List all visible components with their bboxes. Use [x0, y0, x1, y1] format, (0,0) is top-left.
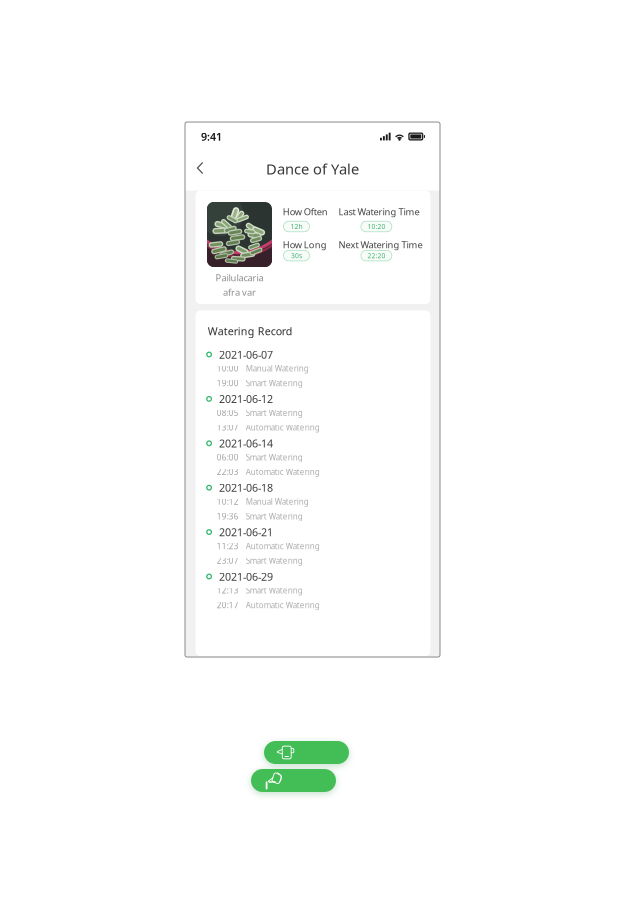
staticText: Smart Watering [246, 585, 303, 596]
staticText: Last Watering Time [339, 205, 420, 218]
staticText: Pailulacaria [215, 271, 263, 284]
staticText: Automatic Watering [246, 422, 320, 433]
staticText: afra var [223, 286, 256, 298]
staticText: Smart Watering [246, 555, 303, 566]
staticText: Automatic Watering [246, 467, 320, 477]
staticText: 2021-06-29 [219, 569, 273, 584]
staticText: 11:23 [217, 541, 239, 551]
staticText: How Long [283, 238, 327, 251]
button[interactable]: Pour water [251, 769, 336, 792]
staticText: Dance of Yale [266, 159, 359, 178]
staticText: Automatic Watering [246, 600, 320, 610]
staticText: 2021-06-18 [219, 481, 273, 495]
staticText: How Often [283, 205, 328, 218]
staticText: 10:00 [217, 363, 239, 374]
staticText: 22:03 [217, 467, 239, 477]
staticText: Smart Watering [246, 452, 303, 463]
staticText: 30s [291, 251, 302, 260]
staticText: 19:00 [217, 378, 239, 388]
staticText: 23:07 [217, 555, 239, 566]
staticText: 2021-06-07 [219, 347, 273, 362]
staticText: 12:13 [217, 585, 239, 596]
button[interactable]: Back [188, 157, 212, 179]
staticText: 22:20 [367, 251, 385, 260]
staticText: Manual Watering [246, 363, 309, 374]
staticText: Manual Watering [246, 496, 309, 507]
staticText: Smart Watering [246, 408, 303, 418]
staticText: 08:05 [217, 408, 239, 418]
staticText: 19:36 [217, 511, 239, 522]
staticText: 12h [290, 222, 302, 231]
staticText: 06:00 [217, 452, 239, 463]
staticText: 2021-06-14 [219, 436, 273, 450]
staticText: 9:41 [201, 129, 222, 144]
staticText: Smart Watering [246, 511, 303, 522]
button[interactable]: Water now [264, 741, 349, 764]
staticText: 13:07 [217, 422, 239, 433]
staticText: 2021-06-21 [219, 525, 273, 539]
staticText: Automatic Watering [246, 541, 320, 551]
staticText: 10:20 [367, 222, 385, 231]
staticText: Smart Watering [246, 378, 303, 388]
staticText: Watering Record [208, 324, 293, 338]
staticText: 20:17 [217, 600, 239, 610]
staticText: Next Watering Time [339, 238, 423, 251]
staticText: 10:12 [217, 496, 239, 507]
staticText: 2021-06-12 [219, 392, 273, 406]
